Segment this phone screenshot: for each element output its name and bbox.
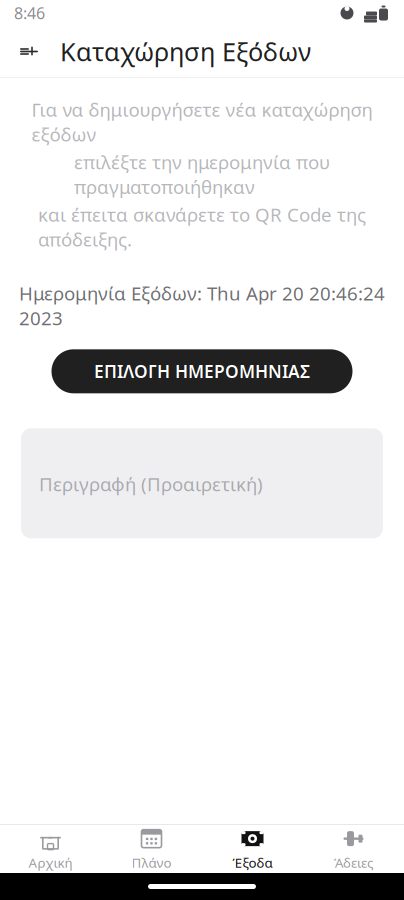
staticText: Αρχική [28,854,72,871]
staticText: Για να δημιουργήσετε νέα καταχώρηση εξόδ… [31,97,372,147]
staticText: Άδειες [334,854,373,871]
staticText: 8:46 [14,2,45,24]
staticText: Καταχώρηση Εξόδων [60,35,311,68]
button[interactable]: ΕΠΙΛΟΓΗ ΗΜΕΡΟΜΗΝΙΑΣ [51,349,352,393]
staticText: Ημερομηνία Εξόδων: Thu Apr 20 20:46:24 2… [19,281,385,330]
staticText: Περιγραφή (Προαιρετική) [39,471,263,496]
staticText: Πλάνο [131,854,171,871]
staticText: και έπειτα σκανάρετε το QR Code της απόδ… [38,202,366,252]
staticText: ΕΠΙΛΟΓΗ ΗΜΕΡΟΜΗΝΙΑΣ [94,360,310,383]
button[interactable]: Περιγραφή (Προαιρετική) [21,428,383,538]
button[interactable]: Αρχική [0,825,101,873]
button[interactable]: Έξοδα [202,825,303,873]
button[interactable]: Back [6,28,52,74]
staticText: Έξοδα [232,854,272,871]
button[interactable]: Πλάνο [101,825,202,873]
staticText: επιλέξτε την ημερομηνία που πραγματοποιή… [74,150,330,199]
button[interactable]: Άδειες [303,825,404,873]
